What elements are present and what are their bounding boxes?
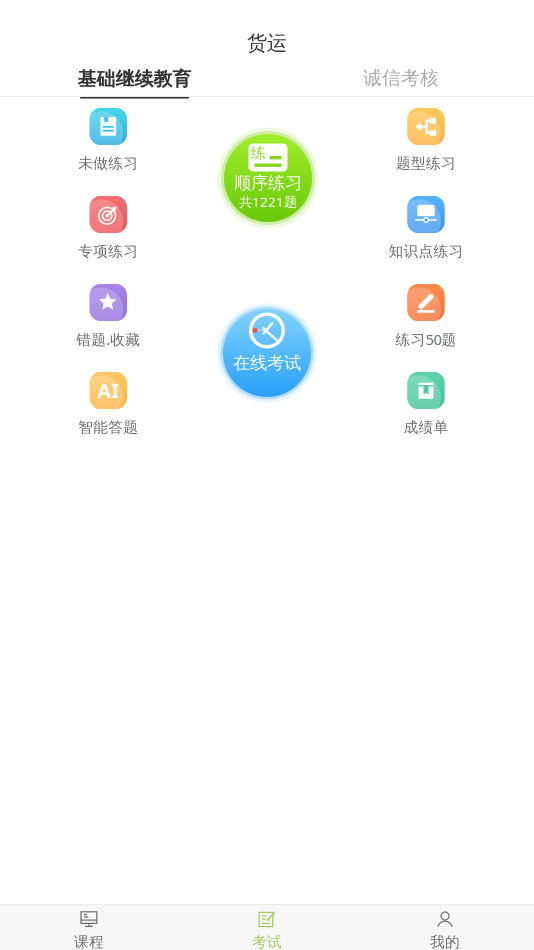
staticText: 顺序练习 [234, 172, 302, 194]
staticText: 练 [251, 144, 266, 162]
button[interactable]: AI [38, 366, 178, 432]
button[interactable]: 练习50题 [356, 278, 496, 344]
button[interactable]: 知识点练习 [356, 190, 496, 256]
button[interactable]: 题型练习 [356, 102, 496, 168]
staticText: 练习50题 [395, 329, 456, 349]
staticText: 未做练习 [78, 154, 138, 172]
staticText: 在线考试 [233, 352, 301, 374]
button[interactable]: 课程 [0, 905, 178, 950]
button[interactable]: 考试 [178, 905, 356, 950]
staticText: 共1221题 [239, 193, 297, 210]
staticText: 基础继续教育 [77, 67, 191, 90]
staticText: 智能答题 [78, 418, 138, 436]
staticText: 诚信考核 [363, 66, 439, 89]
staticText: 课程 [74, 933, 104, 950]
button[interactable]: 未做练习 [38, 102, 178, 168]
button[interactable]: 我的 [356, 905, 534, 950]
button[interactable]: 诚信考核 [301, 56, 501, 100]
staticText: 题型练习 [396, 154, 456, 172]
button[interactable]: 专项练习 [38, 190, 178, 256]
button[interactable]: 练 [217, 127, 318, 228]
staticText: 成绩单 [403, 418, 448, 436]
staticText: 专项练习 [78, 242, 138, 260]
staticText: 错题.收藏 [76, 329, 140, 349]
button[interactable]: 错题.收藏 [38, 278, 178, 344]
staticText: 货运 [247, 31, 287, 55]
button[interactable]: 在线考试 [217, 303, 316, 402]
button[interactable]: 基础继续教育 [34, 58, 234, 102]
button[interactable]: 成绩单 [356, 366, 496, 432]
staticText: 知识点练习 [388, 242, 463, 260]
staticText: 我的 [430, 933, 460, 950]
staticText: AI [97, 377, 119, 404]
staticText: 考试 [252, 933, 282, 950]
